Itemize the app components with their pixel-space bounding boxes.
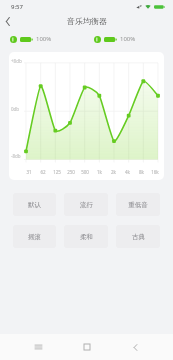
button[interactable]: 摇滚 <box>13 225 56 248</box>
button[interactable]: 流行 <box>64 193 108 216</box>
button[interactable]: 重低音 <box>116 193 160 216</box>
staticText: 音乐均衡器 <box>67 16 107 26</box>
staticText: 摇滚 <box>28 233 41 241</box>
staticText: 1k <box>97 169 102 175</box>
staticText: 125 <box>53 169 61 175</box>
staticText: +8db <box>11 58 22 64</box>
button[interactable]: 古典 <box>116 225 160 248</box>
staticText: 柔和 <box>80 233 93 241</box>
staticText: 2k <box>111 169 116 175</box>
staticText: 8k <box>139 169 144 175</box>
staticText: 250 <box>67 169 75 175</box>
button[interactable]: Back <box>125 337 145 357</box>
staticText: -8db <box>11 153 21 159</box>
staticText: 古典 <box>132 233 145 241</box>
staticText: 9:57 <box>11 3 23 11</box>
button[interactable]: +8db <box>9 52 164 180</box>
staticText: 0db <box>11 106 20 112</box>
staticText: 100% <box>120 35 136 43</box>
button[interactable]: Recents <box>28 337 48 357</box>
staticText: 500 <box>81 169 89 175</box>
button[interactable]: Back <box>0 13 16 29</box>
staticText: 默认 <box>28 201 41 209</box>
button[interactable]: 默认 <box>13 193 56 216</box>
staticText: 31 <box>26 169 32 175</box>
staticText: 16k <box>151 169 159 175</box>
staticText: 62 <box>40 169 46 175</box>
staticText: 4k <box>125 169 130 175</box>
staticText: 流行 <box>80 201 93 209</box>
staticText: 重低音 <box>128 201 148 209</box>
button[interactable]: Home <box>77 337 97 357</box>
staticText: 100% <box>36 35 52 43</box>
button[interactable]: 柔和 <box>64 225 108 248</box>
